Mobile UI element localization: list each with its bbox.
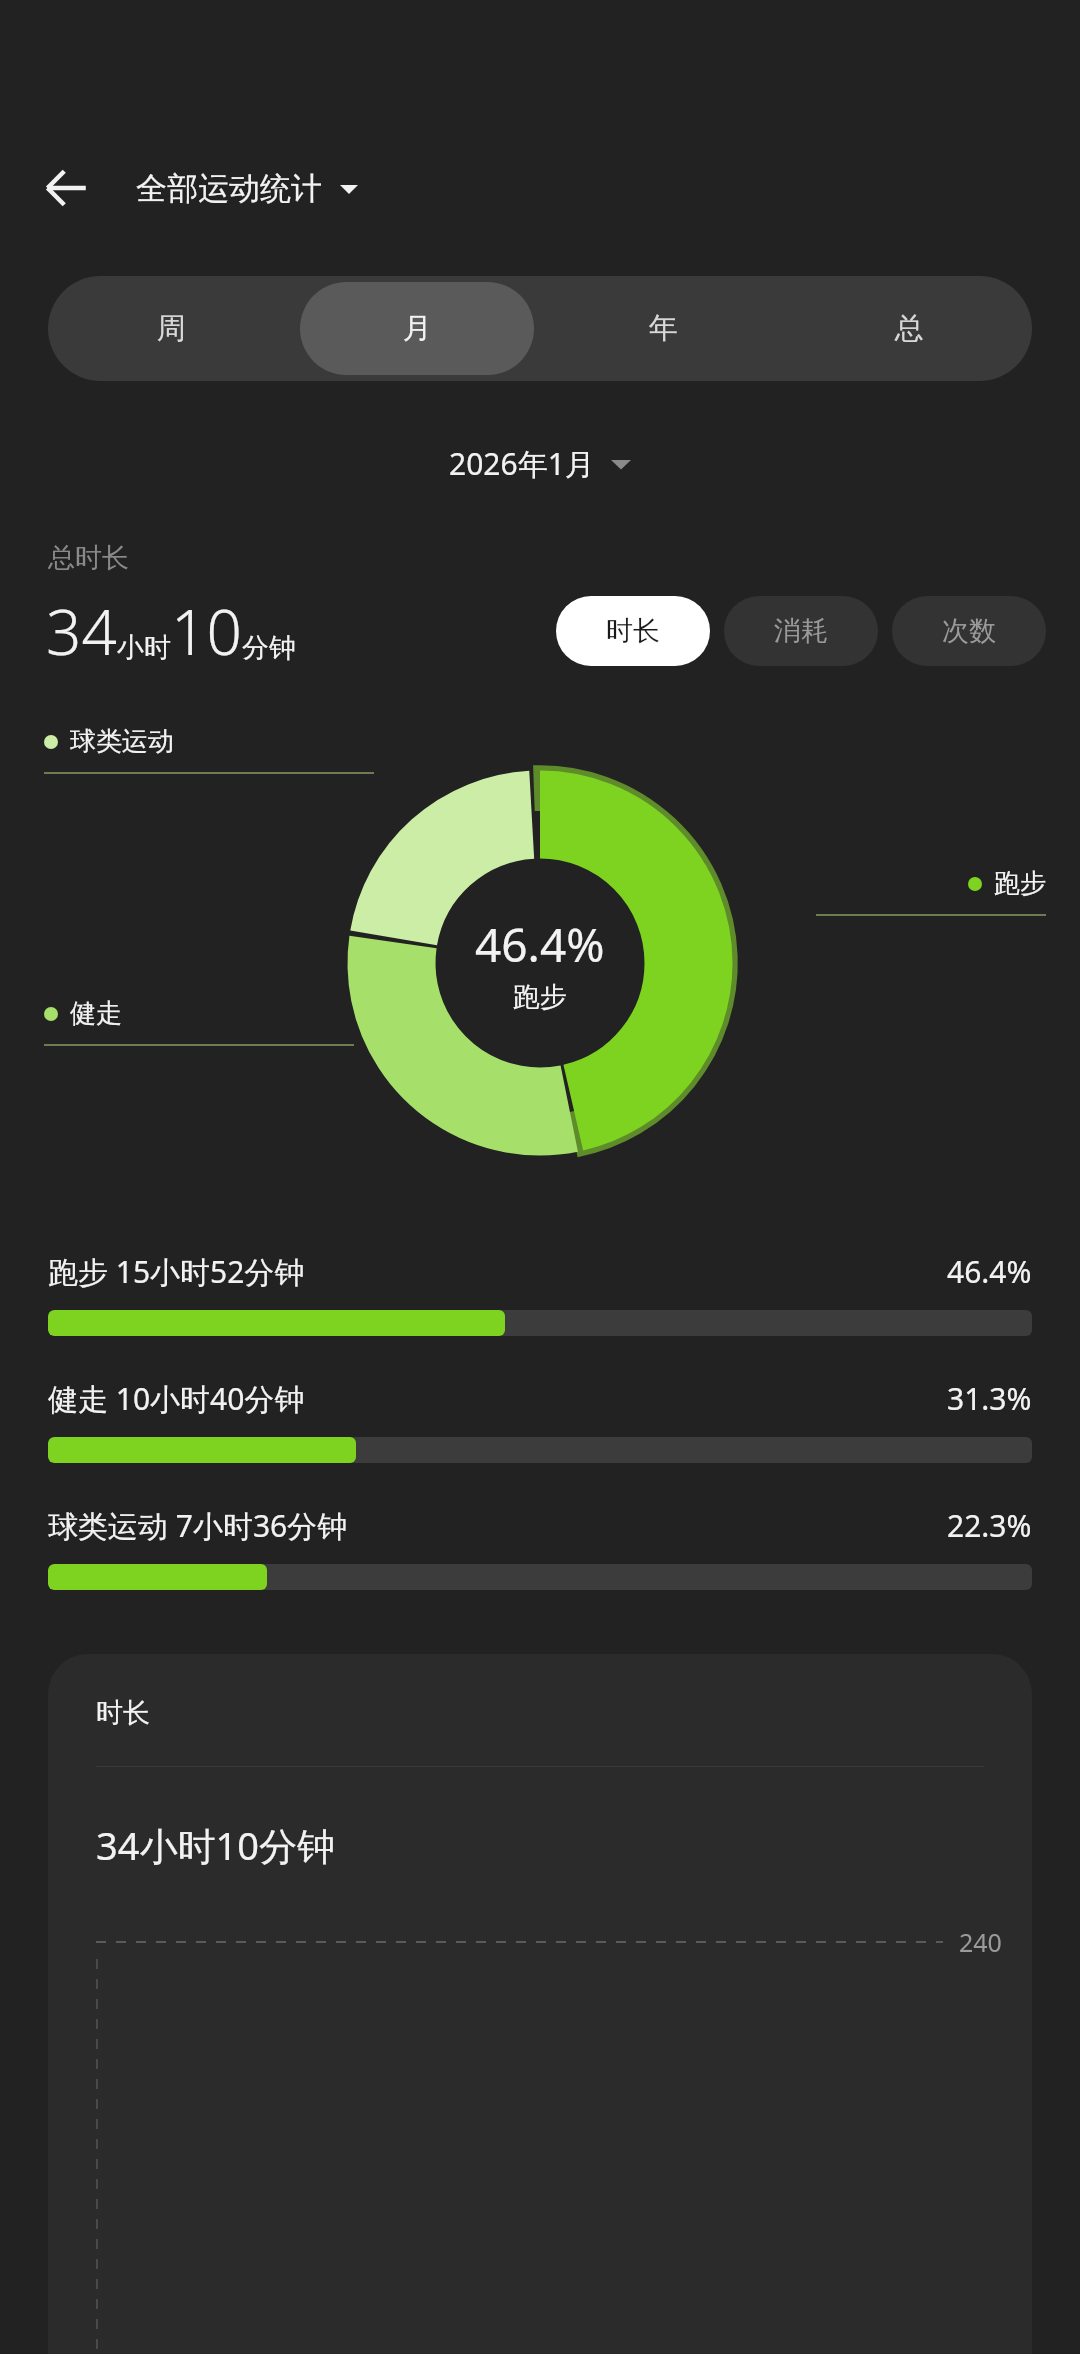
staticText: 分钟 [242,631,296,665]
staticText: 跑步 15小时52分钟 [48,1251,305,1292]
staticText: 46.4% [947,1251,1032,1292]
button[interactable]: 全部运动统计 [136,169,358,208]
staticText: 34 [46,589,117,673]
staticText: 全部运动统计 [136,169,322,208]
staticText: 小时 [117,631,171,665]
staticText: 球类运动 [70,725,174,758]
staticText: 周 [157,310,186,347]
button[interactable]: 年 [546,282,780,375]
staticText: 消耗 [774,614,828,648]
staticText: 次数 [942,614,996,648]
button[interactable]: 总 [792,282,1026,375]
staticText: 240 [959,1925,1002,1959]
button[interactable]: 月 [300,282,534,375]
staticText: 月 [403,310,432,347]
staticText: 总 [895,310,924,347]
button[interactable]: 时长 [556,596,710,666]
staticText: 31.3% [947,1378,1032,1419]
staticText: 跑步 [994,867,1046,900]
staticText: 健走 [70,997,122,1030]
button[interactable]: 2026年1月 [449,443,631,484]
button[interactable]: 周 [54,282,288,375]
button[interactable]: 健走 10小时40分钟 [0,1378,1080,1463]
staticText: 健走 10小时40分钟 [48,1378,305,1419]
staticText: 2026年1月 [449,443,595,484]
staticText: 年 [649,310,678,347]
staticText: 时长 [96,1696,150,1730]
staticText: 46.4% [475,913,605,976]
button[interactable]: 消耗 [724,596,878,666]
staticText: 跑步 [513,980,567,1014]
button[interactable]: 次数 [892,596,1046,666]
button[interactable]: Back [30,152,102,224]
button[interactable]: 球类运动 7小时36分钟 [0,1505,1080,1590]
staticText: 22.3% [947,1505,1032,1546]
staticText: 球类运动 7小时36分钟 [48,1505,348,1546]
button[interactable]: 时长 [48,1654,1032,2354]
staticText: 34小时10分钟 [96,1819,335,1871]
staticText: 总时长 [48,541,129,575]
staticText: 时长 [606,614,660,648]
staticText: 10 [171,589,242,673]
button[interactable]: 跑步 15小时52分钟 [0,1251,1080,1336]
